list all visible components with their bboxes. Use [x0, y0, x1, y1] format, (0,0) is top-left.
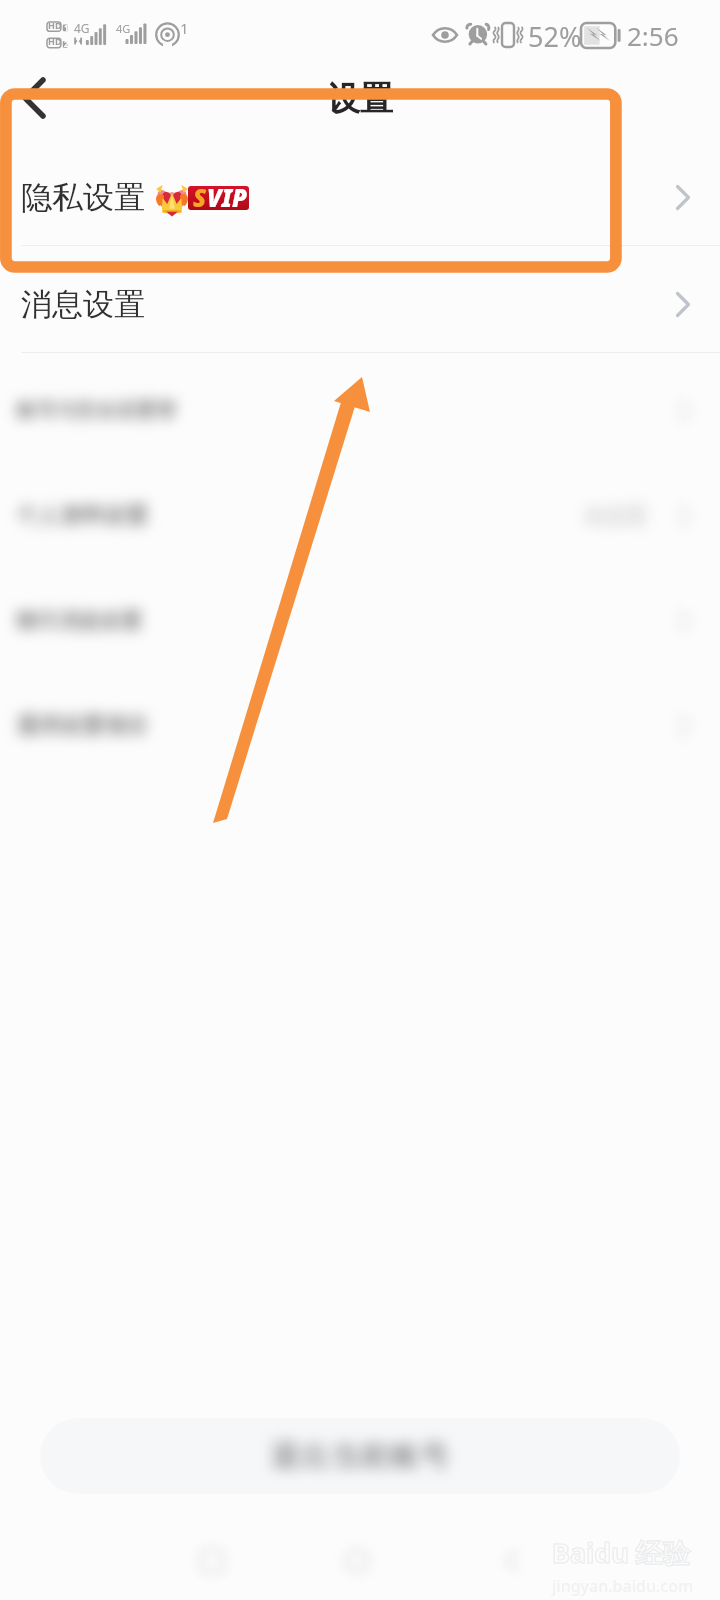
staticText: 聊天消息设置 — [16, 608, 142, 634]
staticText: 未设置 — [584, 503, 647, 529]
staticText: 2 — [64, 38, 69, 49]
button[interactable]: 通用设置项目 — [0, 673, 720, 778]
staticText: 退出当前账号 — [270, 1437, 450, 1475]
staticText: 通用设置项目 — [16, 712, 148, 740]
button[interactable]: 退出当前账号 — [40, 1418, 680, 1494]
staticText: 4G — [74, 20, 90, 36]
staticText: Baidu 经验 — [552, 1534, 690, 1571]
staticText: 消息设置 — [21, 285, 145, 324]
staticText: 设置 — [327, 78, 393, 120]
staticText: 1 — [180, 18, 189, 38]
staticText: 52% — [528, 18, 582, 55]
staticText: 个人资料设置 — [16, 502, 148, 530]
staticText: jingyan.baidu.com — [552, 1575, 694, 1597]
button[interactable]: 账号与安全设置管 — [0, 358, 720, 463]
staticText: 隐私设置 — [21, 178, 145, 217]
staticText: VIP — [207, 181, 247, 214]
button[interactable]: 聊天消息设置 — [0, 568, 720, 673]
staticText: HD — [48, 35, 62, 47]
staticText: S — [193, 181, 207, 214]
button[interactable]: 消息设置 — [0, 251, 720, 358]
staticText: HD — [48, 19, 62, 31]
button[interactable]: 返回 — [6, 70, 62, 126]
button[interactable]: 个人资料设置 — [0, 463, 720, 568]
staticText: 2:56 — [627, 18, 679, 53]
button[interactable]: 隐私设置 — [0, 144, 720, 251]
staticText: 账号与安全设置管 — [16, 398, 176, 423]
staticText: 4G — [116, 21, 131, 36]
staticText: 1 — [64, 22, 69, 33]
